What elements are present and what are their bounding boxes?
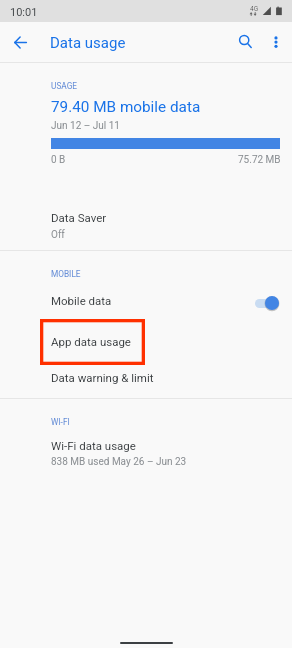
staticText: USAGE (51, 81, 78, 91)
staticText: Wi-Fi data usage (51, 439, 136, 452)
staticText: 79.40 MB mobile data (51, 98, 201, 116)
staticText: App data usage (51, 335, 131, 348)
staticText: WI-FI (51, 417, 70, 427)
button[interactable]: USAGE (0, 63, 292, 173)
button[interactable]: Data Saver (0, 200, 292, 247)
button[interactable]: App data usage (0, 319, 292, 365)
staticText: Data usage (50, 34, 126, 52)
button[interactable]: Mobile data (0, 284, 292, 318)
button[interactable]: Mobile data on (255, 296, 279, 310)
staticText: 4G (250, 5, 259, 13)
staticText: 838 MB used May 26 – Jun 23 (51, 456, 187, 468)
button[interactable]: Search (230, 26, 262, 58)
staticText: Jun 12 – Jul 11 (51, 120, 120, 132)
staticText: Mobile data (51, 294, 112, 307)
button[interactable]: Wi-Fi data usage (0, 432, 292, 477)
staticText: Off (51, 229, 65, 241)
button[interactable]: Data warning & limit (0, 365, 292, 397)
staticText: 10:01 (10, 6, 38, 19)
button[interactable]: More options (260, 26, 292, 58)
staticText: MOBILE (51, 269, 81, 279)
staticText: 75.72 MB (238, 154, 281, 166)
staticText: Data Saver (51, 211, 107, 224)
button[interactable]: Navigate up (4, 26, 36, 58)
staticText: 0 B (51, 154, 66, 166)
staticText: Data warning & limit (51, 371, 154, 384)
